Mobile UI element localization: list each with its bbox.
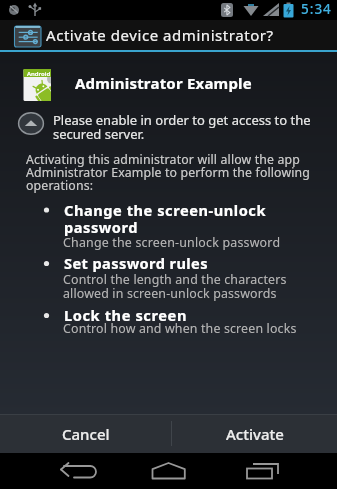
button[interactable]	[113, 453, 225, 489]
staticText: Lock the screen	[64, 305, 187, 325]
button[interactable]	[18, 112, 44, 135]
staticText: Change the screen-unlock password	[63, 234, 281, 251]
button[interactable]: Activate	[172, 415, 337, 453]
staticText: Cancel	[62, 424, 110, 444]
button[interactable]	[0, 453, 113, 489]
staticText: Please enable in order to get access to …	[53, 111, 311, 143]
button[interactable]	[225, 453, 337, 489]
staticText: 5:34	[301, 0, 332, 18]
staticText: Android	[27, 70, 51, 78]
staticText: Activate device administrator?	[46, 25, 274, 45]
staticText: Set password rules	[64, 253, 208, 273]
staticText: Control how and when the screen locks	[63, 320, 297, 337]
staticText: Administrator Example	[75, 73, 252, 93]
staticText: Control the length and the characters al…	[63, 271, 287, 301]
staticText: Activating this administrator will allow…	[26, 151, 311, 194]
button[interactable]: Cancel	[0, 415, 171, 453]
staticText: Activate	[226, 424, 284, 444]
staticText: Change the screen-unlock password	[64, 200, 267, 237]
